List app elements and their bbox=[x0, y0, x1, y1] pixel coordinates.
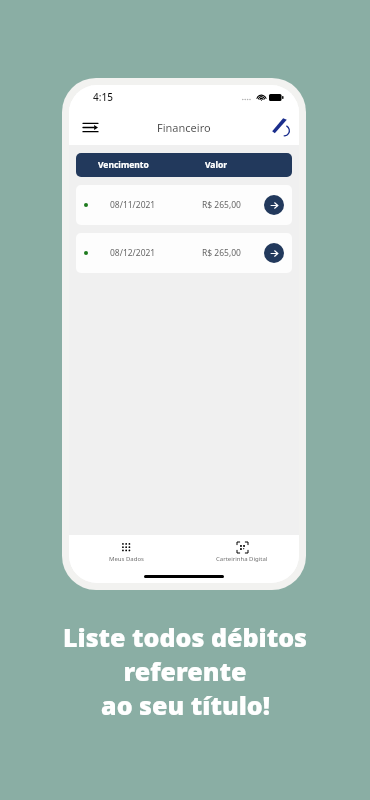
button[interactable]: Vencimento bbox=[76, 153, 292, 177]
staticText: Valor bbox=[205, 159, 228, 171]
button[interactable]: Profile bbox=[267, 114, 293, 140]
staticText: ao seu título! bbox=[101, 688, 270, 722]
staticText: 08/11/2021 bbox=[110, 199, 156, 211]
staticText: Carteirinha Digital bbox=[216, 555, 268, 563]
staticText: Financeiro bbox=[157, 120, 211, 135]
button[interactable]: 08/12/2021 bbox=[76, 233, 292, 273]
staticText: R$ 265,00 bbox=[202, 199, 241, 211]
staticText: Meus Dados bbox=[109, 555, 144, 563]
button[interactable]: Menu bbox=[79, 116, 101, 138]
button[interactable]: Detalhes bbox=[264, 243, 284, 263]
staticText: 4:15 bbox=[93, 90, 113, 104]
button[interactable]: Meus Dados bbox=[69, 535, 184, 569]
button[interactable]: Detalhes bbox=[264, 195, 284, 215]
button[interactable]: Carteirinha Digital bbox=[184, 535, 299, 569]
staticText: R$ 265,00 bbox=[202, 247, 241, 259]
button[interactable]: 08/11/2021 bbox=[76, 185, 292, 225]
staticText: Vencimento bbox=[98, 159, 149, 171]
staticText: 08/12/2021 bbox=[110, 247, 156, 259]
staticText: Liste todos débitos referente bbox=[0, 620, 370, 688]
